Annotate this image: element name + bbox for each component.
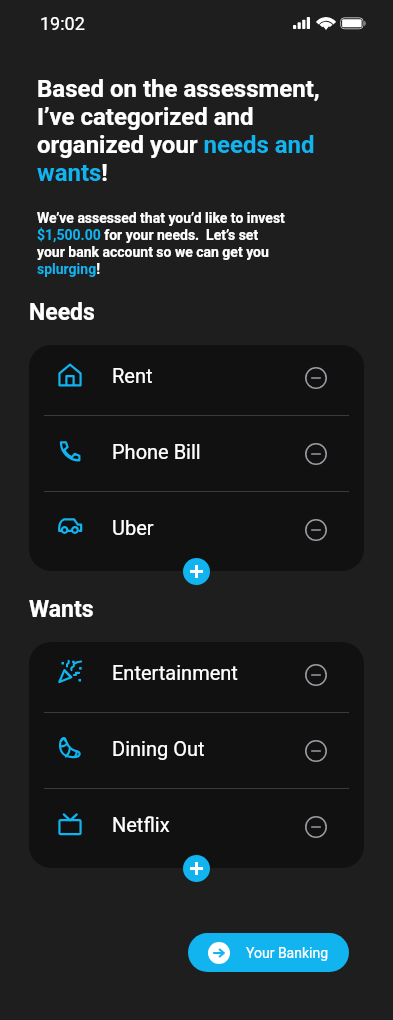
staticText: We’ve assessed that you’d like to invest… [37,210,288,278]
button[interactable]: Rent [29,345,364,413]
button[interactable]: Netflix [29,786,364,862]
button[interactable]: Remove [294,729,338,773]
button[interactable]: Add item [183,558,210,585]
staticText: Phone Bill [112,440,201,463]
button[interactable]: Add item [183,855,210,882]
staticText: Based on the assessment, I’ve categorize… [37,75,347,187]
staticText: Netflix [112,813,170,836]
button[interactable]: Your Banking [188,933,349,972]
button[interactable]: Uber [29,489,364,565]
staticText: Rent [112,364,153,387]
button[interactable]: Dining Out [29,710,364,786]
button[interactable]: Remove [294,432,338,476]
staticText: Entertainment [112,661,238,684]
button[interactable]: Remove [294,805,338,849]
staticText: Uber [112,516,154,539]
staticText: Needs [29,299,95,326]
button[interactable]: Phone Bill [29,413,364,489]
button[interactable]: Remove [294,653,338,697]
staticText: Dining Out [112,737,205,760]
button[interactable]: Remove [294,508,338,552]
button[interactable]: Remove [294,356,338,400]
staticText: Wants [29,596,94,623]
staticText: 19:02 [40,13,85,34]
button[interactable]: Entertainment [29,642,364,710]
staticText: Your Banking [246,945,329,961]
